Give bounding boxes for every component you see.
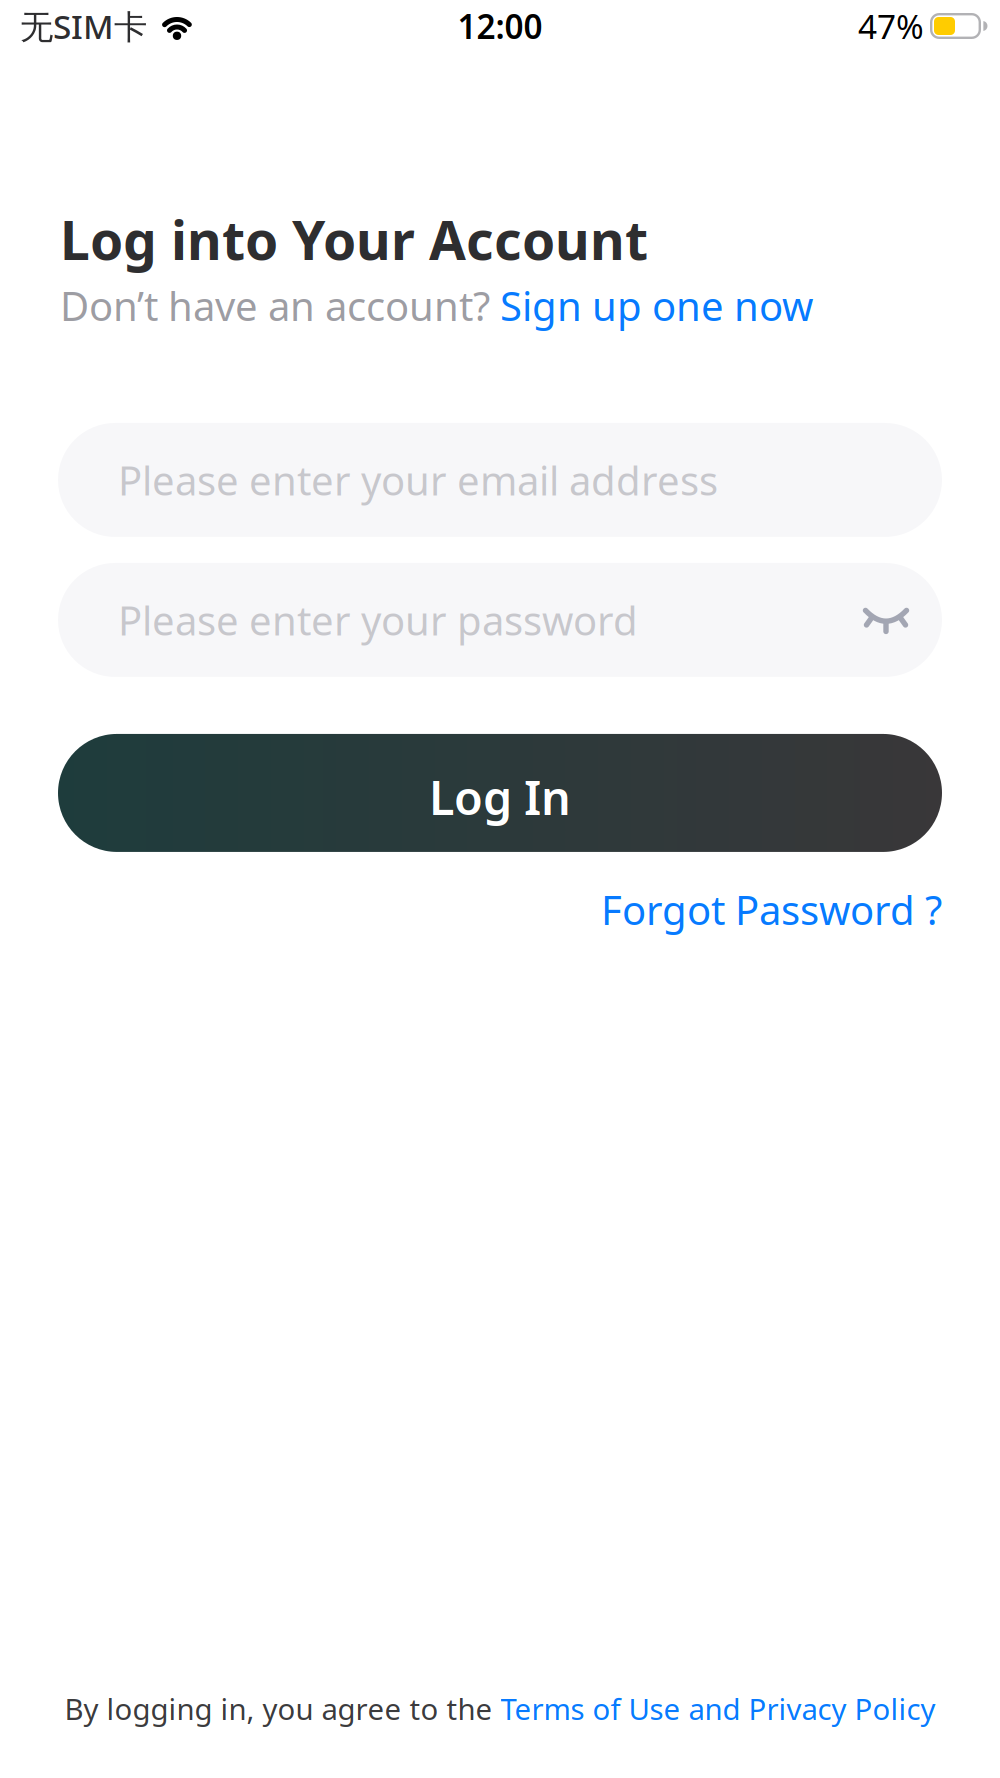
staticText: Please enter your email address	[118, 453, 718, 506]
button[interactable]: Terms of Use and Privacy Policy	[500, 1689, 935, 1728]
staticText: Please enter your password	[118, 593, 638, 646]
button[interactable]: Show password	[862, 606, 910, 634]
button[interactable]: Forgot Password ?	[601, 883, 942, 936]
staticText: 无SIM卡	[20, 4, 147, 48]
staticText: 12:00	[457, 4, 542, 48]
staticText: Forgot Password ?	[601, 883, 942, 936]
button[interactable]: Please enter your email address	[58, 423, 942, 537]
button[interactable]: Sign up one now	[500, 279, 813, 332]
staticText: 47%	[858, 4, 924, 48]
staticText: Sign up one now	[500, 279, 813, 332]
button[interactable]: Please enter your password	[58, 563, 942, 677]
staticText: Terms of Use and Privacy Policy	[500, 1689, 935, 1728]
staticText: Don’t have an account?	[60, 279, 500, 332]
button[interactable]: Log In	[58, 734, 942, 852]
staticText: Log into Your Account	[60, 204, 648, 275]
staticText: By logging in, you agree to the	[64, 1689, 500, 1728]
staticText: Log In	[429, 766, 571, 828]
